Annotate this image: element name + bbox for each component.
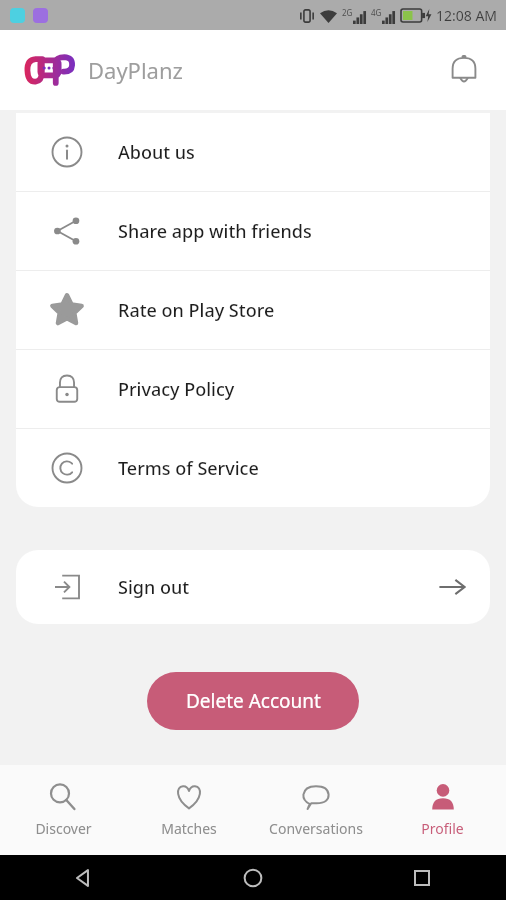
staticText: Rate on Play Store	[118, 298, 275, 323]
staticText: 4G	[371, 7, 382, 18]
staticText: Matches	[161, 819, 217, 838]
button[interactable]: Conversations	[252, 765, 379, 855]
button[interactable]: Share app with friends	[16, 192, 490, 270]
button[interactable]: Recents	[337, 855, 506, 900]
staticText: Privacy Policy	[118, 377, 235, 402]
button[interactable]: Privacy Policy	[16, 350, 490, 428]
staticText: 12:08 AM	[436, 6, 498, 25]
button[interactable]: Discover	[0, 765, 126, 855]
button[interactable]: Matches	[126, 765, 252, 855]
button[interactable]: Home	[168, 855, 337, 900]
button[interactable]: Notifications	[440, 46, 488, 94]
button[interactable]: Terms of Service	[16, 429, 490, 507]
staticText: About us	[118, 140, 195, 165]
staticText: Share app with friends	[118, 219, 312, 244]
staticText: 2G	[342, 7, 353, 18]
staticText: Conversations	[269, 819, 363, 838]
staticText: DayPlanz	[88, 55, 183, 85]
button[interactable]: Back	[0, 855, 168, 900]
button[interactable]: Delete Account	[147, 672, 359, 730]
button[interactable]: Profile	[379, 765, 506, 855]
staticText: Discover	[35, 819, 92, 838]
staticText: Sign out	[118, 575, 190, 600]
button[interactable]: About us	[16, 113, 490, 191]
staticText: Delete Account	[186, 688, 321, 714]
button[interactable]: Rate on Play Store	[16, 271, 490, 349]
button[interactable]: Sign out	[16, 550, 490, 624]
staticText: Profile	[421, 819, 464, 838]
staticText: Terms of Service	[118, 456, 259, 481]
